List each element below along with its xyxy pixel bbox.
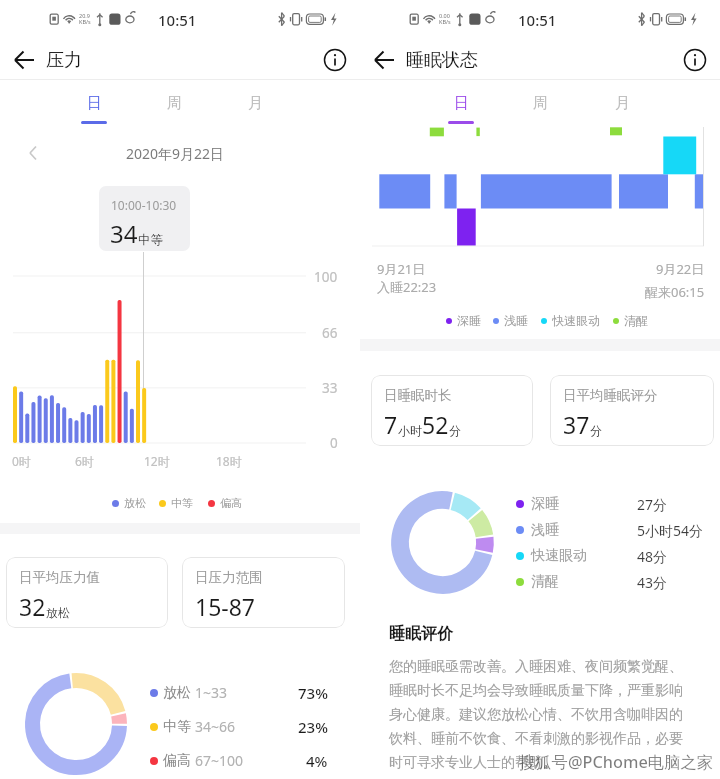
staticText: 34~66 <box>195 717 236 736</box>
staticText: 5小时54分 <box>637 521 704 540</box>
button[interactable]: 清醒 <box>516 572 716 592</box>
button[interactable]: 周 <box>154 80 194 131</box>
staticText: 67~100 <box>195 751 244 770</box>
staticText: 放松 <box>124 496 146 510</box>
staticText: 1~33 <box>195 683 228 702</box>
staticText: 醒来06:15 <box>645 283 705 301</box>
staticText: 快速眼动 <box>531 547 587 565</box>
staticText: 2020年9月22日 <box>126 144 225 163</box>
button[interactable]: 浅睡 <box>516 520 716 540</box>
staticText: 分 <box>590 423 602 438</box>
button[interactable]: 日压力范围 <box>182 557 345 628</box>
staticText: 中等 <box>138 232 163 248</box>
staticText: 10:51 <box>158 10 197 30</box>
staticText: 0时 <box>12 453 31 469</box>
staticText: 10:51 <box>518 10 557 30</box>
button[interactable]: 偏高 <box>150 750 328 771</box>
staticText: 月 <box>248 94 263 113</box>
staticText: 月 <box>615 94 630 113</box>
staticText: 27分 <box>637 495 668 514</box>
staticText: 入睡22:23 <box>377 278 437 296</box>
button[interactable]: 中等 <box>150 716 328 737</box>
staticText: 您的睡眠亟需改善。入睡困难、夜间频繁觉醒、睡眠时长不足均会导致睡眠质量下降，严重… <box>389 658 687 771</box>
staticText: 100 <box>314 268 338 286</box>
staticText: 小时 <box>398 423 422 438</box>
staticText: 日 <box>87 94 102 113</box>
staticText: 浅睡 <box>504 313 528 328</box>
button[interactable]: 月 <box>235 80 275 131</box>
staticText: 中等 <box>163 718 191 736</box>
button[interactable]: Info <box>680 45 710 75</box>
staticText: 清醒 <box>531 573 559 591</box>
button[interactable]: Back <box>369 44 401 76</box>
button[interactable]: Back <box>9 44 41 76</box>
staticText: 偏高 <box>220 496 242 510</box>
staticText: 浅睡 <box>531 521 559 539</box>
staticText: 66 <box>322 324 338 342</box>
button[interactable]: 10:00-10:30 <box>99 186 190 251</box>
staticText: 43分 <box>637 573 668 592</box>
staticText: 放松 <box>46 605 70 620</box>
staticText: 日平均压力值 <box>19 569 100 586</box>
staticText: 9月22日 <box>656 260 705 278</box>
staticText: 15-87 <box>195 591 256 622</box>
staticText: 0.00 KB/s <box>439 12 451 26</box>
staticText: 深睡 <box>457 313 481 328</box>
button[interactable]: 快速眼动 <box>516 546 716 566</box>
button[interactable]: 日平均睡眠评分 <box>550 375 714 446</box>
staticText: 压力 <box>46 49 82 72</box>
staticText: 搜狐号@PChome电脑之家 <box>519 751 713 773</box>
button[interactable]: 日 <box>74 80 114 131</box>
staticText: 周 <box>533 94 548 113</box>
staticText: 快速眼动 <box>552 313 600 328</box>
staticText: 12时 <box>144 453 170 469</box>
staticText: 6时 <box>75 453 94 469</box>
staticText: 深睡 <box>531 495 559 513</box>
staticText: 48分 <box>637 547 668 566</box>
staticText: 34 <box>110 217 138 250</box>
staticText: 32 <box>19 591 46 622</box>
staticText: 日压力范围 <box>195 569 263 586</box>
staticText: 4% <box>306 751 328 771</box>
button[interactable]: 周 <box>520 80 560 131</box>
staticText: 20.9 KB/s <box>79 12 91 26</box>
staticText: 日睡眠时长 <box>384 387 452 404</box>
staticText: 23% <box>298 717 328 737</box>
button[interactable]: 放松 <box>150 682 328 703</box>
staticText: 睡眠评价 <box>389 624 453 644</box>
staticText: 清醒 <box>624 313 648 328</box>
button[interactable]: 月 <box>602 80 642 131</box>
staticText: 日平均睡眠评分 <box>563 387 658 404</box>
staticText: 分 <box>449 423 461 438</box>
button[interactable]: 日睡眠时长 <box>371 375 533 446</box>
staticText: 周 <box>167 94 182 113</box>
button[interactable]: 日 <box>441 80 481 131</box>
staticText: 9月21日 <box>377 260 426 278</box>
staticText: 18时 <box>216 453 242 469</box>
staticText: 偏高 <box>163 752 191 770</box>
staticText: 37 <box>563 409 590 440</box>
button[interactable]: 日平均压力值 <box>6 557 168 628</box>
staticText: 73% <box>298 683 328 703</box>
button[interactable]: 深睡 <box>516 494 716 514</box>
staticText: 日 <box>454 94 469 113</box>
staticText: 10:00-10:30 <box>111 197 177 213</box>
staticText: 睡眠状态 <box>406 49 478 72</box>
staticText: 33 <box>322 379 338 397</box>
staticText: 中等 <box>171 496 193 510</box>
staticText: 0 <box>330 434 338 452</box>
staticText: 放松 <box>163 684 191 702</box>
button[interactable]: Info <box>320 45 350 75</box>
staticText: 7 <box>384 409 398 440</box>
staticText: 52 <box>422 409 449 440</box>
button[interactable]: Previous day <box>20 141 44 165</box>
